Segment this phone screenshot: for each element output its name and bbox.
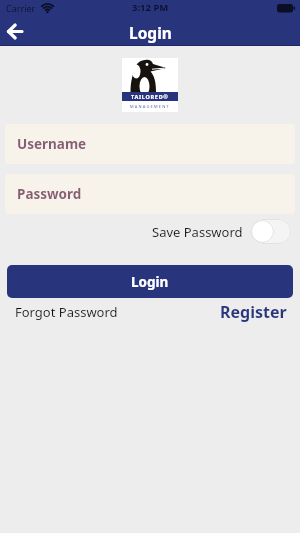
button[interactable]: Password	[5, 174, 295, 214]
button[interactable]	[250, 219, 291, 244]
button[interactable]: Register	[220, 301, 287, 323]
button[interactable]: Username	[5, 124, 295, 164]
staticText: 3:12 PM	[132, 1, 169, 14]
staticText: Password	[17, 185, 82, 203]
staticText: TAILORED®	[131, 93, 169, 100]
staticText: Login	[131, 273, 169, 291]
staticText: Carrier	[6, 2, 36, 14]
button[interactable]: Forgot Password	[15, 303, 118, 321]
staticText: Register	[220, 301, 287, 323]
staticText: Save Password	[152, 223, 243, 241]
staticText: Forgot Password	[15, 303, 118, 321]
staticText: MANAGEMENT	[130, 104, 170, 109]
staticText: Username	[17, 135, 87, 153]
button[interactable]	[2, 19, 28, 43]
staticText: Login	[129, 22, 172, 43]
button[interactable]: Login	[7, 265, 293, 298]
